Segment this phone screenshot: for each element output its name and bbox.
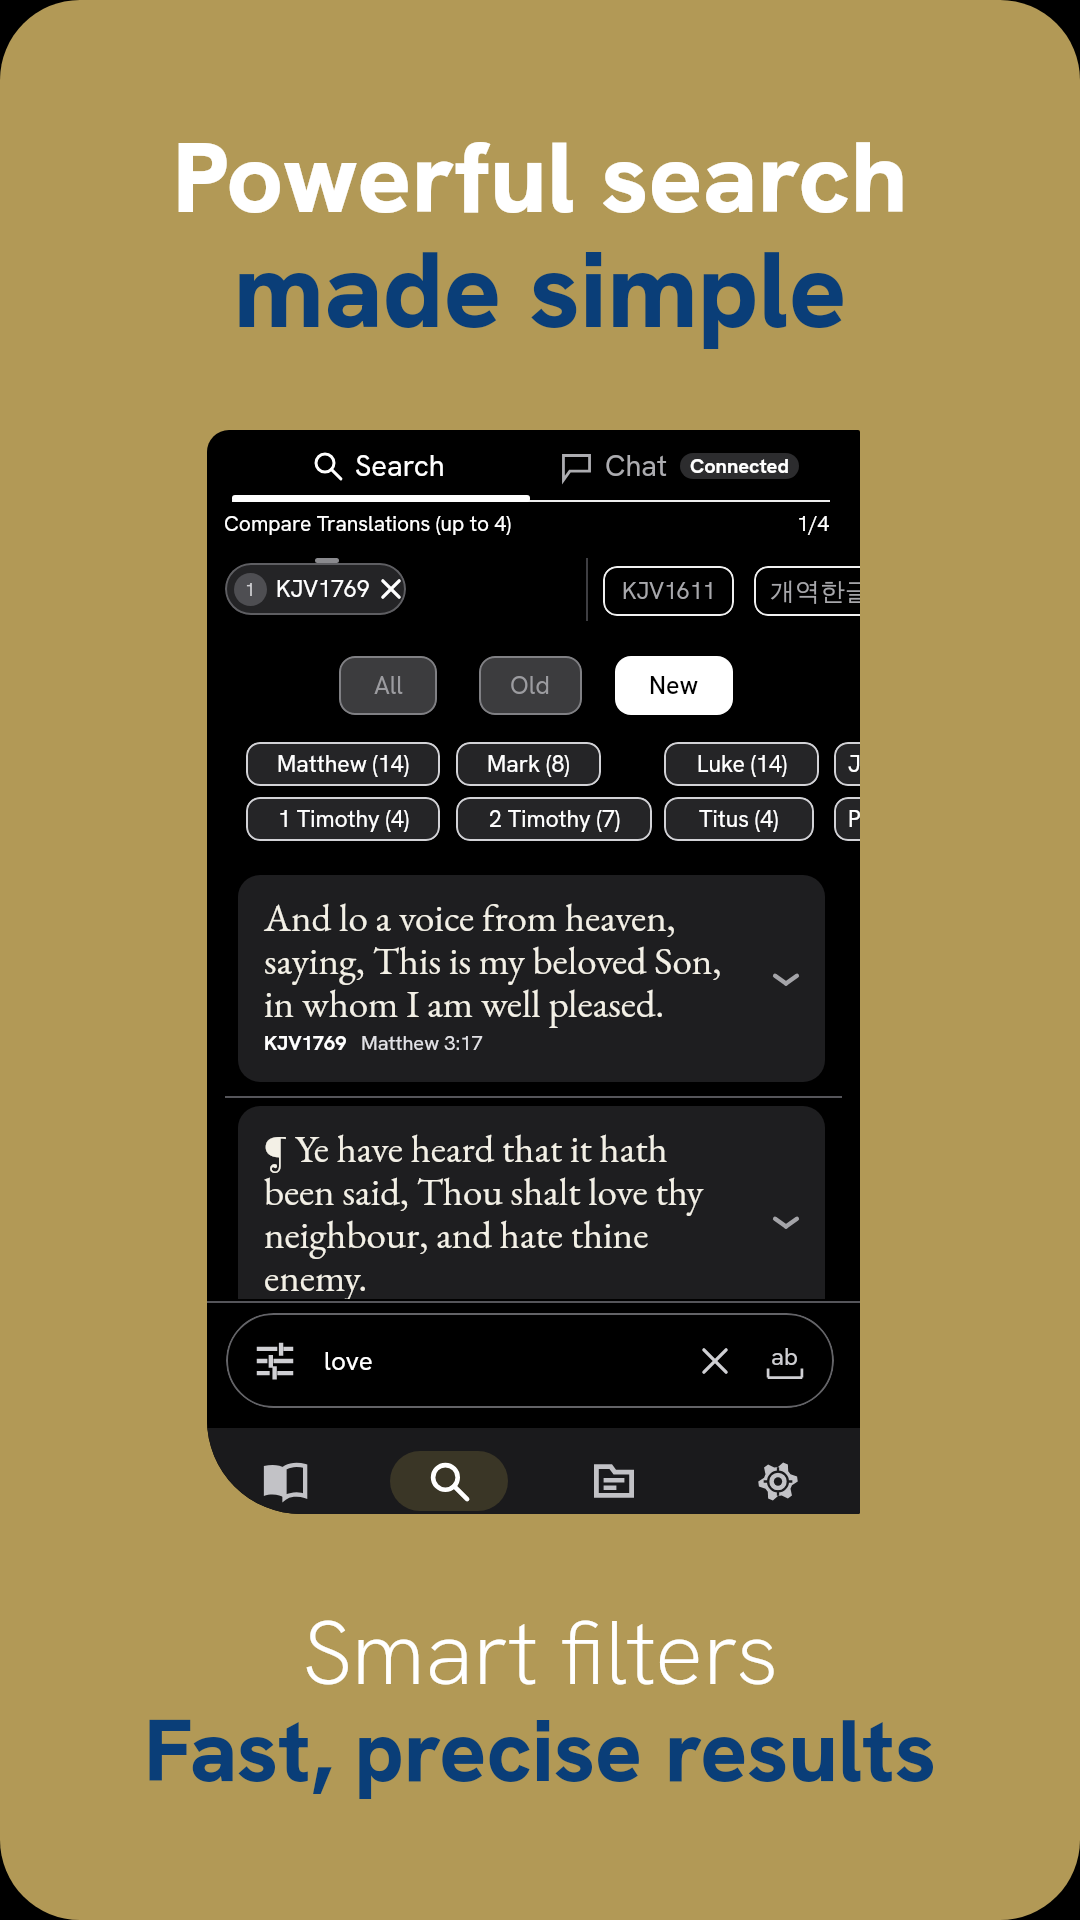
- button[interactable]: 개역한글: [754, 566, 860, 616]
- button[interactable]: All: [339, 656, 437, 715]
- staticText: All: [374, 669, 403, 702]
- staticText: Fast, precise results: [144, 1694, 936, 1807]
- button[interactable]: P: [834, 797, 860, 841]
- staticText: Chat: [605, 447, 667, 485]
- button[interactable]: Expand: [766, 1202, 806, 1242]
- staticText: in whom I am well pleased.: [264, 978, 665, 1029]
- staticText: Powerful search: [172, 112, 908, 242]
- button[interactable]: Search: [313, 447, 445, 485]
- staticText: Old: [510, 669, 551, 702]
- button[interactable]: 2 Timothy (7): [456, 797, 652, 841]
- button[interactable]: Titus (4): [664, 797, 814, 841]
- staticText: KJV1611: [622, 576, 716, 606]
- staticText: 1/4: [797, 510, 830, 537]
- staticText: 1: [245, 578, 256, 601]
- button[interactable]: Folders: [576, 1453, 652, 1509]
- button[interactable]: Settings: [740, 1453, 816, 1509]
- staticText: J: [848, 749, 860, 779]
- button[interactable]: Luke (14): [664, 742, 819, 786]
- staticText: And lo a voice from heaven,: [264, 892, 676, 943]
- button[interactable]: 1 Timothy (4): [246, 797, 440, 841]
- staticText: 2 Timothy (7): [489, 804, 620, 834]
- staticText: Matthew (14): [277, 749, 409, 779]
- button[interactable]: love: [226, 1313, 834, 1408]
- staticText: saying, This is my beloved Son,: [264, 935, 722, 986]
- button[interactable]: Old: [479, 656, 582, 715]
- staticText: Connected: [690, 453, 789, 479]
- button[interactable]: Chat: [562, 447, 799, 485]
- staticText: neighbour, and hate thine: [264, 1209, 649, 1260]
- staticText: Smart filters: [302, 1594, 779, 1711]
- staticText: P: [848, 804, 860, 834]
- button[interactable]: ¶ Ye have heard that it hath: [238, 1106, 825, 1338]
- staticText: Mark (8): [487, 749, 570, 779]
- staticText: KJV1769: [276, 574, 370, 604]
- staticText: Titus (4): [699, 804, 779, 834]
- button[interactable]: New: [615, 656, 733, 715]
- staticText: ab: [771, 1341, 799, 1372]
- staticText: New: [649, 669, 699, 702]
- button[interactable]: Clear: [696, 1342, 734, 1380]
- button[interactable]: Match case: [764, 1340, 806, 1382]
- staticText: 1 Timothy (4): [278, 804, 409, 834]
- staticText: Matthew 3:17: [361, 1030, 483, 1056]
- button[interactable]: Search: [390, 1451, 508, 1511]
- button[interactable]: KJV1611: [603, 566, 734, 616]
- staticText: Compare Translations (up to 4): [224, 510, 511, 537]
- button[interactable]: Read: [246, 1453, 322, 1509]
- staticText: KJV1769: [264, 1030, 347, 1056]
- staticText: been said, Thou shalt love thy: [264, 1166, 704, 1217]
- button[interactable]: Expand: [766, 959, 806, 999]
- staticText: love: [324, 1344, 373, 1378]
- button[interactable]: And lo a voice from heaven,: [238, 875, 825, 1082]
- staticText: ¶ Ye have heard that it hath: [264, 1123, 668, 1174]
- button[interactable]: Matthew (14): [246, 742, 440, 786]
- button[interactable]: J: [834, 742, 860, 786]
- staticText: 개역한글: [770, 576, 860, 607]
- staticText: enemy.: [264, 1252, 368, 1303]
- staticText: Luke (14): [697, 749, 787, 779]
- staticText: made simple: [233, 220, 847, 359]
- button[interactable]: Mark (8): [456, 742, 601, 786]
- staticText: Search: [355, 447, 445, 485]
- button[interactable]: 1: [225, 563, 406, 615]
